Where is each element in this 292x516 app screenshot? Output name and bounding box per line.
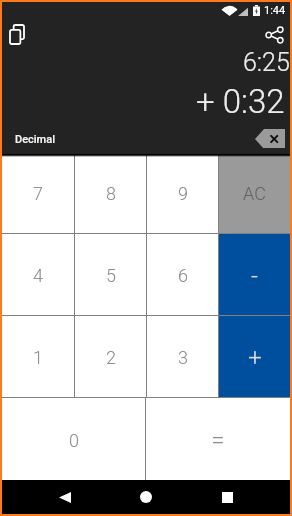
button[interactable]: 4 [2,234,74,315]
button[interactable]: Backspace [255,129,285,149]
staticText: = [211,426,225,454]
button[interactable]: Copy [2,19,32,49]
staticText: 8 [106,183,116,204]
button[interactable]: Back [45,480,85,514]
button[interactable]: 7 [2,152,74,233]
staticText: - [251,262,258,290]
button[interactable]: Share [259,20,289,50]
staticText: Decimal [15,133,55,146]
button[interactable]: Home [126,480,166,514]
staticText: 2 [106,347,116,368]
button[interactable]: + [219,316,290,397]
button[interactable]: 2 [75,316,146,397]
staticText: 5 [106,265,116,286]
button[interactable]: 3 [147,316,218,397]
staticText: AC [243,183,266,204]
staticText: 0 [69,430,79,451]
staticText: 7 [33,183,43,204]
staticText: 3 [178,347,188,368]
staticText: 1:44 [264,4,286,17]
staticText: 1 [33,347,43,368]
staticText: 9 [178,183,188,204]
button[interactable]: 0 [2,398,145,480]
staticText: + [248,344,262,372]
button[interactable]: = [146,398,290,480]
staticText: 4 [33,265,43,286]
button[interactable]: 9 [147,152,218,233]
button[interactable]: - [219,234,290,315]
button[interactable]: AC [219,152,290,233]
staticText: + 0:32 [196,82,285,121]
staticText: 6 [178,265,188,286]
button[interactable]: 1 [2,316,74,397]
button[interactable]: 6 [147,234,218,315]
staticText: 6:25 [243,48,290,77]
button[interactable]: 8 [75,152,146,233]
button[interactable]: 5 [75,234,146,315]
button[interactable]: Recent apps [207,480,247,514]
